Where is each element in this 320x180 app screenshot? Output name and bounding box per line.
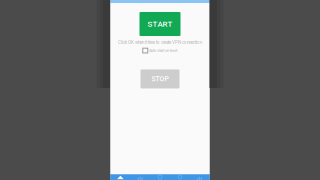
button[interactable]: Servers	[150, 174, 170, 180]
button[interactable]: STOP	[140, 69, 179, 88]
button[interactable]: Auto start on boot	[143, 48, 177, 53]
button[interactable]: START	[139, 12, 180, 36]
staticText: Click OK when it tries to create VPN con…	[118, 40, 202, 45]
button[interactable]: More	[190, 174, 209, 180]
staticText: STOP	[151, 75, 168, 83]
staticText: Auto start on boot	[149, 48, 177, 53]
staticText: START	[147, 19, 172, 29]
button[interactable]: Account	[170, 174, 190, 180]
button[interactable]: Statistics	[130, 174, 150, 180]
button[interactable]: Home	[110, 174, 130, 180]
